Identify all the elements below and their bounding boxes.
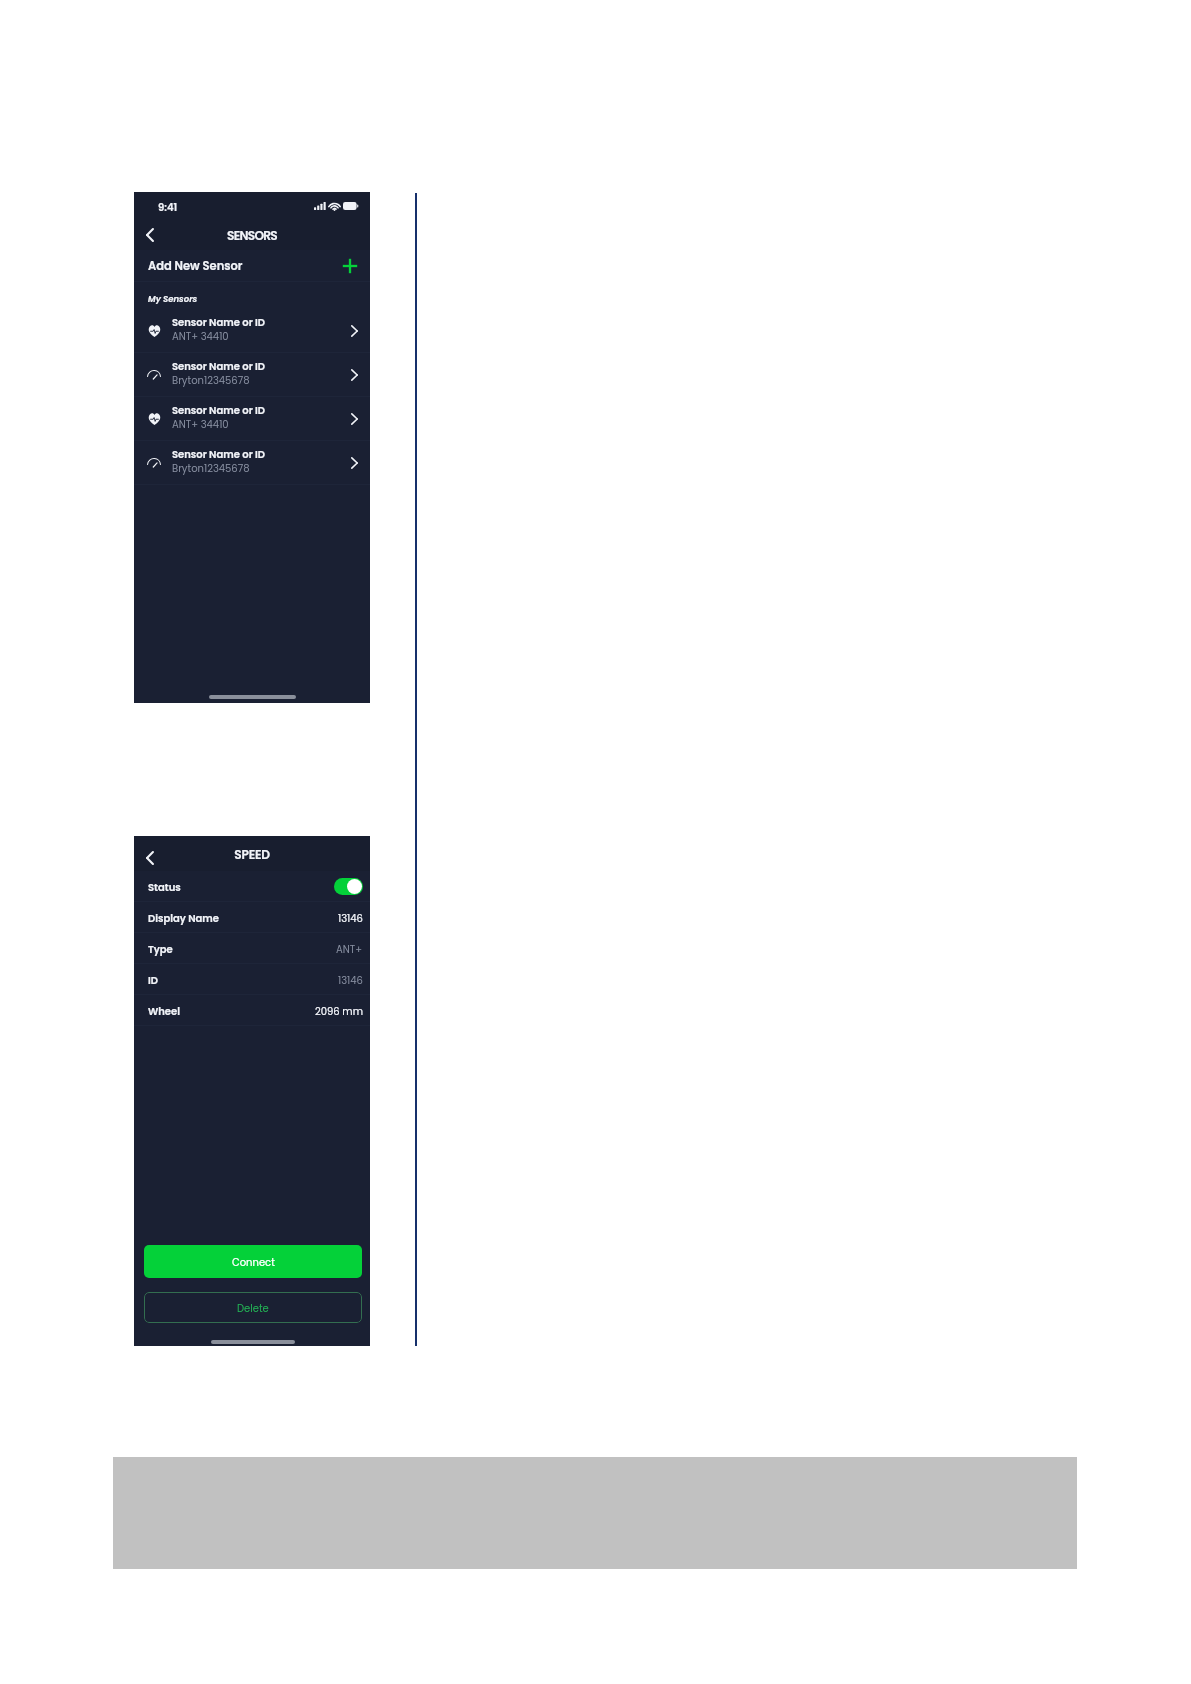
button[interactable]: ID — [134, 964, 370, 995]
button[interactable]: Display Name — [134, 902, 370, 933]
staticText: 13146 — [338, 911, 363, 925]
staticText: 9:41 — [158, 200, 178, 214]
staticText: Bryton12345678 — [172, 461, 250, 475]
staticText: Sensor Name or ID — [172, 315, 266, 329]
button[interactable]: Wheel — [134, 995, 370, 1026]
button[interactable]: Sensor Name or ID — [134, 309, 370, 353]
staticText: ANT+ — [336, 942, 363, 956]
button[interactable]: Delete — [144, 1292, 362, 1323]
button[interactable]: Sensor Name or ID — [134, 353, 370, 397]
button[interactable]: Add new sensor — [342, 258, 358, 274]
button[interactable]: Back — [138, 223, 162, 247]
button[interactable]: Status — [134, 871, 370, 902]
staticText: 2096 mm — [315, 1004, 363, 1018]
staticText: Connect — [232, 1255, 275, 1269]
staticText: Sensor Name or ID — [172, 403, 266, 417]
staticText: Status — [148, 880, 181, 894]
staticText: My Sensors — [148, 293, 198, 305]
button[interactable]: Type — [134, 933, 370, 964]
button[interactable]: Sensor Name or ID — [134, 441, 370, 485]
staticText: Add New Sensor — [148, 258, 243, 274]
staticText: SPEED — [134, 846, 370, 863]
staticText: Display Name — [148, 911, 219, 925]
staticText: ID — [148, 973, 158, 987]
button[interactable]: Back — [138, 846, 162, 870]
button[interactable]: Status on — [334, 878, 363, 895]
staticText: SENSORS — [134, 227, 370, 244]
staticText: ANT+ 34410 — [172, 417, 229, 431]
staticText: Bryton12345678 — [172, 373, 250, 387]
staticText: Wheel — [148, 1004, 180, 1018]
staticText: Type — [148, 942, 173, 956]
button[interactable]: Sensor Name or ID — [134, 397, 370, 441]
staticText: Sensor Name or ID — [172, 447, 266, 461]
staticText: ANT+ 34410 — [172, 329, 229, 343]
staticText: Delete — [237, 1301, 269, 1315]
button[interactable]: Connect — [144, 1245, 362, 1278]
staticText: 13146 — [338, 973, 363, 987]
staticText: Sensor Name or ID — [172, 359, 266, 373]
button[interactable]: Add New Sensor — [134, 250, 370, 281]
